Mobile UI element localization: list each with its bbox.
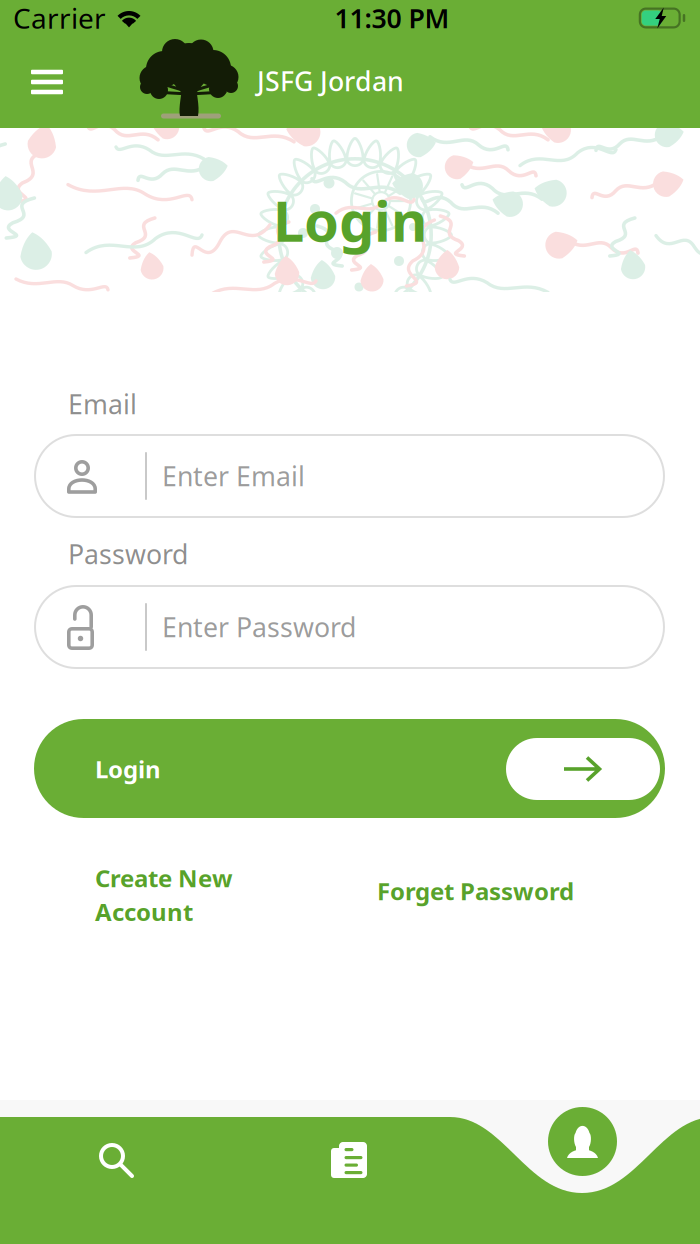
button[interactable]: Profile — [548, 1107, 617, 1176]
staticText: Login — [273, 183, 427, 257]
button[interactable]: Search — [99, 1143, 133, 1177]
button[interactable]: Menu — [16, 52, 78, 112]
staticText: Enter Password — [162, 609, 356, 645]
staticText: Create New — [95, 862, 233, 894]
staticText: Carrier — [13, 0, 106, 37]
staticText: Password — [68, 536, 188, 572]
button[interactable]: Login — [34, 719, 665, 818]
staticText: Login — [95, 753, 161, 785]
button[interactable]: Forget Password — [377, 871, 657, 911]
button[interactable]: News — [331, 1142, 367, 1178]
staticText: Email — [68, 386, 137, 422]
staticText: Account — [95, 896, 193, 928]
staticText: Enter Email — [162, 458, 305, 494]
staticText: JSFG Jordan — [257, 63, 404, 99]
button[interactable]: Create New — [95, 862, 315, 934]
staticText: Forget Password — [377, 875, 574, 907]
staticText: 11:30 PM — [334, 0, 449, 36]
